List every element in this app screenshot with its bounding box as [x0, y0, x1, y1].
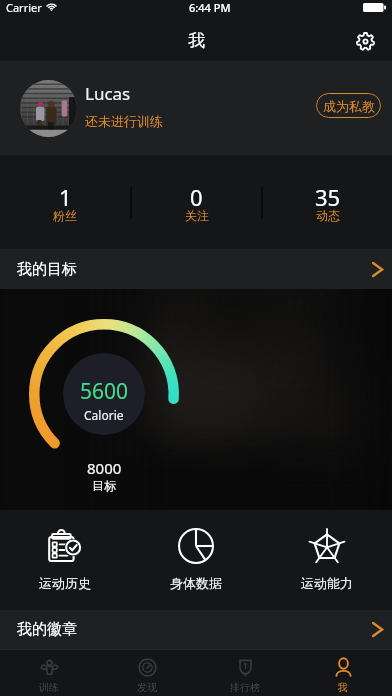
staticText: 成为私教: [323, 98, 375, 114]
staticText: 我: [188, 30, 205, 51]
staticText: 35: [315, 182, 341, 212]
staticText: 6:44 PM: [189, 0, 231, 15]
staticText: 我: [338, 681, 348, 694]
staticText: 粉丝: [53, 208, 77, 223]
button[interactable]: 35: [263, 178, 392, 227]
button[interactable]: 运动历史: [0, 525, 130, 591]
staticText: 排行榜: [230, 681, 260, 694]
staticText: Calorie: [84, 407, 124, 423]
button[interactable]: 我的徽章: [0, 610, 392, 649]
staticText: 我的目标: [17, 260, 77, 279]
staticText: 训练: [39, 681, 59, 694]
staticText: 动态: [316, 208, 340, 223]
button[interactable]: 1: [0, 178, 130, 227]
staticText: 身体数据: [170, 575, 222, 591]
staticText: 还未进行训练: [85, 113, 163, 129]
button[interactable]: 0: [132, 178, 261, 227]
button[interactable]: 排行榜: [196, 652, 294, 694]
staticText: 1: [59, 182, 72, 212]
staticText: 5600: [80, 377, 129, 406]
staticText: Lucas: [85, 82, 131, 105]
staticText: 目标: [92, 478, 116, 493]
staticText: Carrier: [6, 0, 42, 15]
button[interactable]: 身体数据: [130, 525, 261, 591]
staticText: 我的徽章: [17, 620, 77, 639]
staticText: 0: [190, 182, 203, 212]
staticText: 运动历史: [39, 575, 91, 591]
staticText: 发现: [137, 681, 157, 694]
staticText: 运动能力: [301, 575, 353, 591]
staticText: 8000: [87, 458, 122, 478]
button[interactable]: 运动能力: [261, 525, 392, 591]
button[interactable]: 我的目标: [0, 249, 392, 289]
button[interactable]: 发现: [98, 652, 196, 694]
button[interactable]: Lucas: [0, 61, 392, 155]
button[interactable]: 我: [294, 652, 392, 694]
button[interactable]: 成为私教: [316, 93, 381, 118]
staticText: 关注: [185, 208, 209, 223]
button[interactable]: 训练: [0, 652, 98, 694]
button[interactable]: Settings: [348, 24, 382, 58]
